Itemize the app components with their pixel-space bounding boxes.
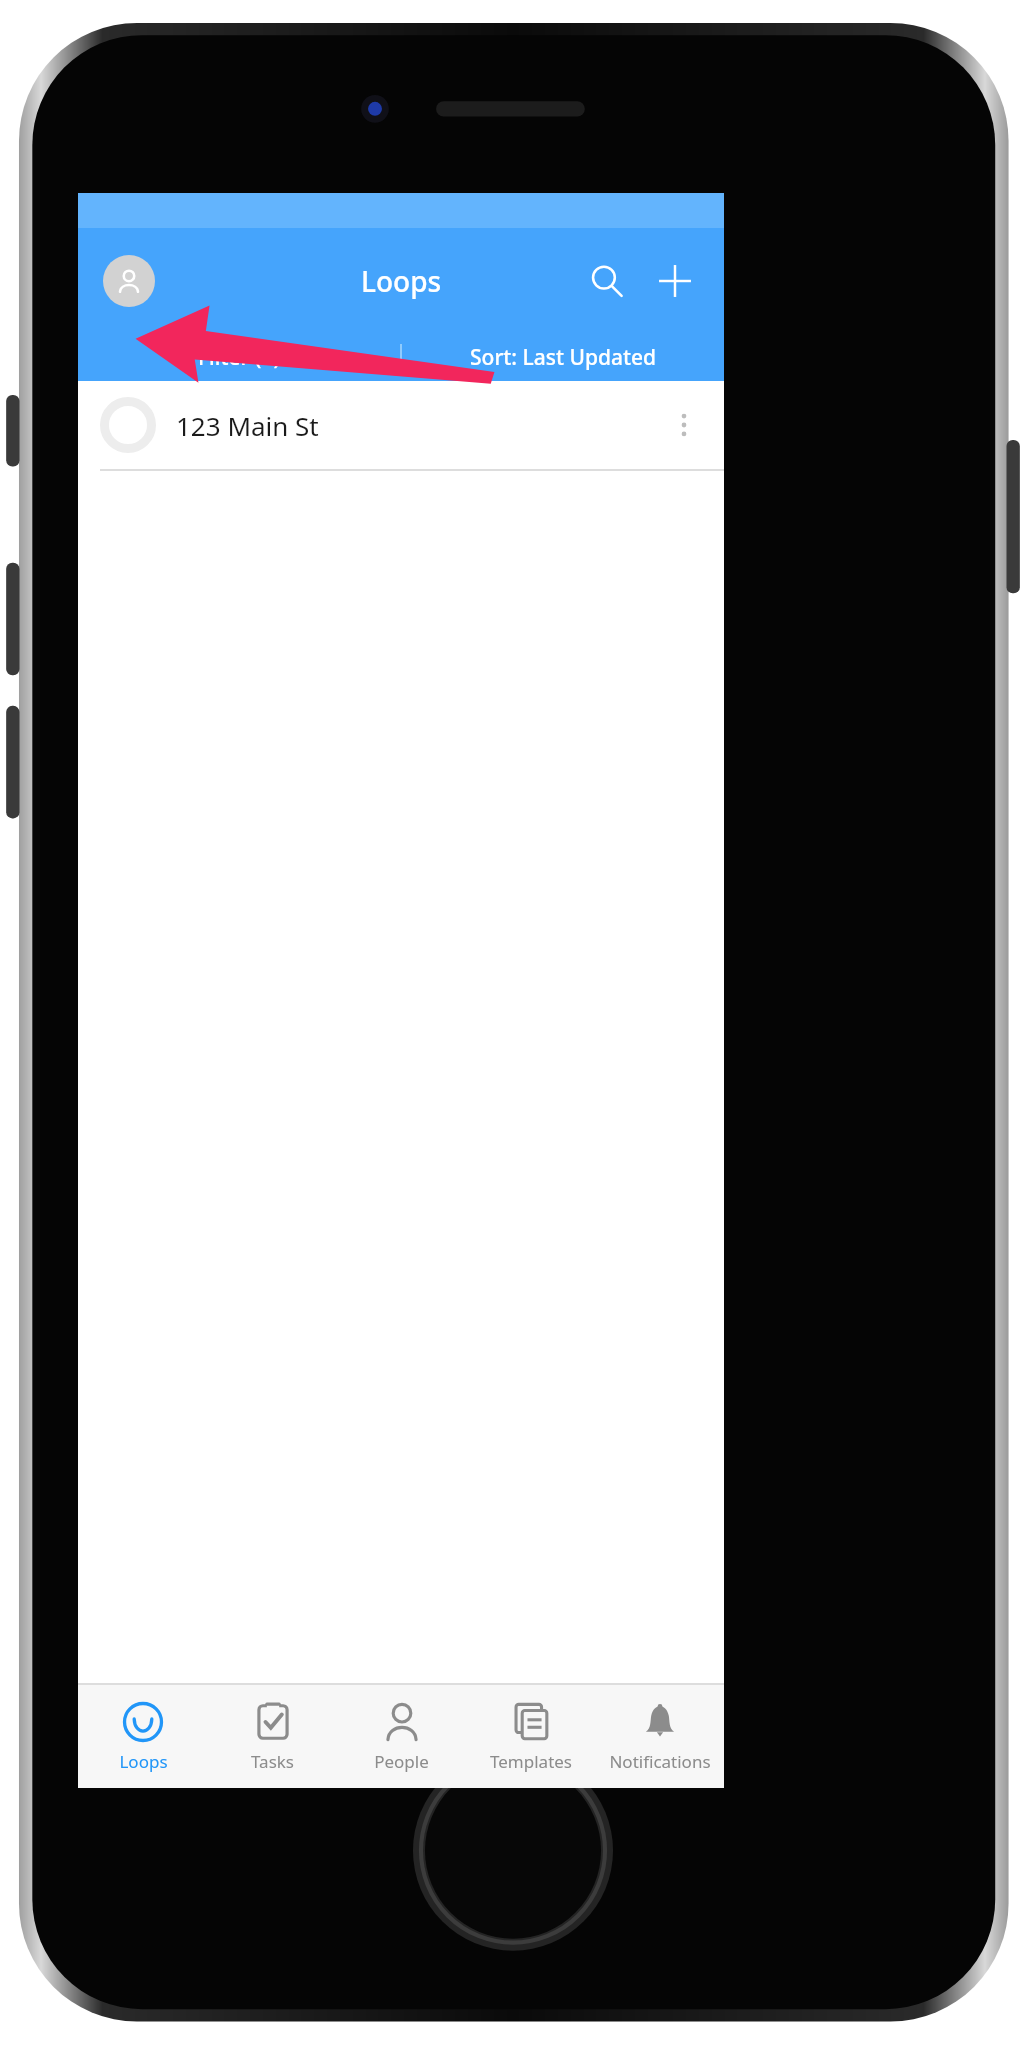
button[interactable]: Filter (8) (78, 333, 400, 381)
button[interactable]: Loops (78, 1685, 208, 1788)
button[interactable]: Profile (103, 255, 155, 307)
button[interactable]: 123 Main St (78, 381, 724, 469)
staticText: Loops (361, 262, 442, 300)
button[interactable]: More options (656, 397, 712, 453)
button[interactable]: Sort: Last Updated (402, 333, 724, 381)
staticText: Notifications (609, 1750, 711, 1773)
button[interactable]: Search (578, 252, 636, 310)
button[interactable]: Templates (466, 1685, 595, 1788)
staticText: People (374, 1750, 429, 1773)
button[interactable]: Notifications (595, 1685, 724, 1788)
staticText: Templates (490, 1750, 572, 1773)
button[interactable]: Add (646, 252, 704, 310)
staticText: 123 Main St (176, 408, 656, 443)
button[interactable]: Tasks (208, 1685, 337, 1788)
staticText: Loops (119, 1750, 168, 1773)
staticText: Sort: Last Updated (470, 343, 657, 372)
button[interactable]: People (337, 1685, 466, 1788)
staticText: Tasks (251, 1750, 294, 1773)
staticText: Filter (8) (198, 343, 280, 372)
